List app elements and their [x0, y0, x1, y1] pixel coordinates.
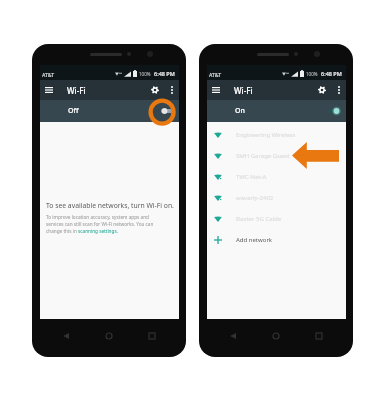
button[interactable]: More options: [331, 80, 346, 100]
staticText: Off: [68, 106, 79, 116]
staticText: Wi-Fi: [67, 85, 86, 96]
staticText: AT&T: [209, 71, 222, 78]
button[interactable]: Settings: [147, 80, 163, 100]
button[interactable]: Home: [267, 327, 285, 345]
staticText: To see available networks, turn Wi-Fi on…: [46, 201, 174, 210]
staticText: Baxter 5G Cable: [236, 215, 282, 223]
staticText: 100%: [139, 71, 151, 77]
staticText: 6:48 PM: [321, 70, 342, 77]
staticText: Wi-Fi: [234, 85, 253, 96]
button[interactable]: Home: [100, 327, 118, 345]
button[interactable]: Recent apps: [143, 327, 161, 345]
button[interactable]: TWC-Net-A: [207, 166, 346, 187]
button[interactable]: On: [207, 100, 346, 122]
staticText: SMH Garage Guest: [236, 152, 290, 160]
button[interactable]: waverly-2402: [207, 187, 346, 208]
button[interactable]: Back: [57, 327, 75, 345]
button[interactable]: Add network: [207, 229, 346, 250]
button[interactable]: Engineering Wireless: [207, 124, 346, 145]
staticText: TWC-Net-A: [236, 173, 267, 181]
button[interactable]: Settings: [314, 80, 330, 100]
button[interactable]: Open navigation menu: [207, 80, 225, 100]
button[interactable]: Back: [224, 327, 242, 345]
staticText: waverly-2402: [236, 194, 274, 202]
staticText: Engineering Wireless: [236, 131, 296, 139]
button[interactable]: More options: [164, 80, 179, 100]
staticText: 6:48 PM: [154, 70, 175, 77]
staticText: On: [235, 106, 245, 116]
staticText: Add network: [236, 236, 273, 244]
button[interactable]: Off: [40, 100, 179, 122]
button[interactable]: Baxter 5G Cable: [207, 208, 346, 229]
button[interactable]: To improve location accuracy, system app…: [46, 214, 155, 235]
button[interactable]: SMH Garage Guest: [207, 145, 346, 166]
staticText: AT&T: [42, 71, 55, 78]
button[interactable]: Recent apps: [310, 327, 328, 345]
button[interactable]: Open navigation menu: [40, 80, 58, 100]
staticText: 100%: [306, 71, 318, 77]
